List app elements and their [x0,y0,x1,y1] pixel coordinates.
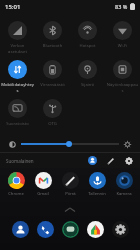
button[interactable]: Phone [34,218,56,240]
button[interactable]: Chrome [3,172,29,197]
staticText: OTG [36,121,69,127]
staticText: Kamera [116,191,132,197]
button[interactable]: Google Home [84,218,106,240]
button[interactable]: Low brightness [8,140,17,149]
button[interactable]: User [87,155,98,166]
button[interactable]: Settings [109,218,131,240]
button[interactable]: Auto brightness [123,140,132,149]
button[interactable]: Kamera [111,172,137,197]
button[interactable]: Tallennin [84,172,110,197]
staticText: Verkon asetukset [1,43,34,54]
button[interactable]: Mobiilidatayhteys [0,56,35,95]
staticText: Tallennin [88,191,106,197]
staticText: Bluetooth [36,43,69,49]
staticText: 15:01 [5,3,21,11]
staticText: Mobiilidatayhteys [1,82,34,93]
staticText: Hotspot [71,43,104,49]
button[interactable]: Sijainti [70,56,105,95]
button[interactable]: Verkon asetukset [0,17,35,56]
button[interactable]: Gmail [30,172,56,197]
staticText: 83 % [115,3,128,10]
staticText: Piirrä [65,191,76,197]
staticText: Gmail [37,191,49,197]
button[interactable]: Virransäästö [35,56,70,95]
button[interactable]: Contacts [9,218,31,240]
button[interactable]: Suoratoisto [0,95,35,134]
button[interactable]: Bluetooth [35,17,70,56]
button[interactable]: Wi-Fi [105,17,140,56]
button[interactable]: Piirrä [57,172,83,197]
staticText: Chrome [8,191,24,197]
button[interactable]: OTG [35,95,70,134]
button[interactable]: Edit [105,155,116,166]
button[interactable]: Suomalainen [6,158,34,164]
staticText: Virransäästö [36,82,69,88]
staticText: Sijainti [71,82,104,88]
button[interactable]: Brightness [21,138,119,150]
button[interactable]: Näytönkaappaus [105,56,140,95]
staticText: Wi-Fi [106,43,139,49]
staticText: Näytönkaappaus [106,82,139,93]
button[interactable]: Hotspot [70,17,105,56]
button[interactable]: Settings [123,155,134,166]
staticText: Suoratoisto [1,121,34,127]
button[interactable]: Messages [59,218,81,240]
